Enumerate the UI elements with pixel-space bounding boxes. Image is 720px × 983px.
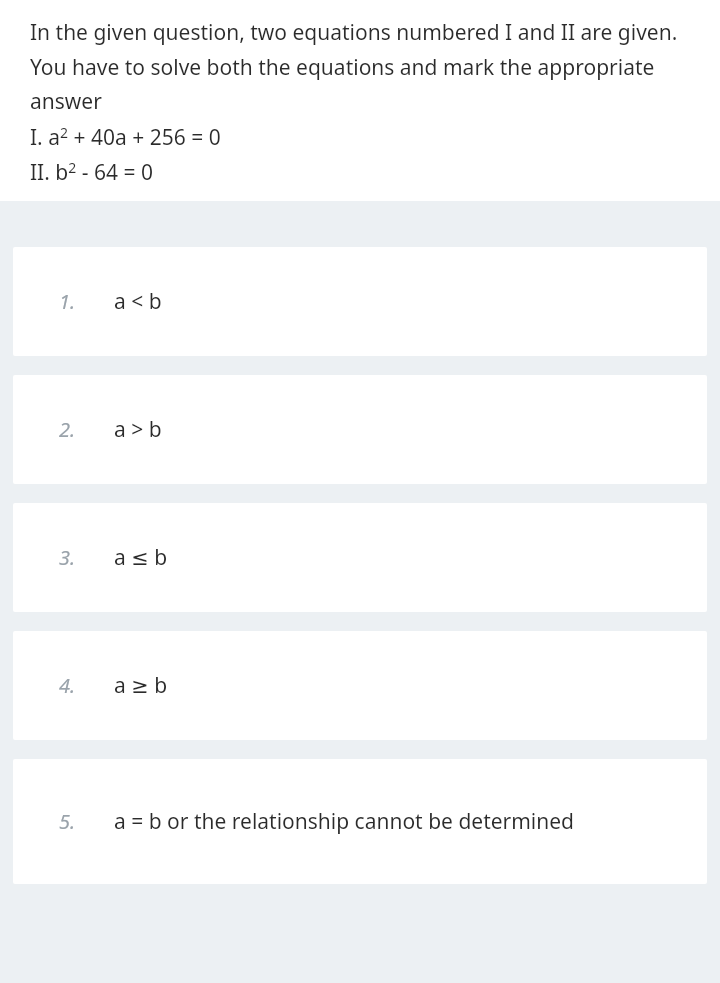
staticText: a ≥ b <box>114 671 168 700</box>
button[interactable]: 4. <box>13 631 707 740</box>
staticText: a = b or the relationship cannot be dete… <box>114 807 575 836</box>
button[interactable]: 1. <box>13 247 707 356</box>
button[interactable]: 3. <box>13 503 707 612</box>
staticText: 2. <box>59 416 76 443</box>
staticText: I. a2 + 40a + 256 = 0 <box>30 123 221 152</box>
button[interactable]: 2. <box>13 375 707 484</box>
staticText: 1. <box>59 288 76 315</box>
staticText: 3. <box>59 544 76 571</box>
staticText: In the given question, two equations num… <box>30 18 702 115</box>
staticText: 4. <box>59 672 76 699</box>
staticText: a < b <box>114 287 162 316</box>
staticText: II. b2 - 64 = 0 <box>30 158 153 187</box>
staticText: a ≤ b <box>114 543 168 572</box>
button[interactable]: 5. <box>13 759 707 884</box>
staticText: 5. <box>59 808 76 835</box>
staticText: a > b <box>114 415 162 444</box>
